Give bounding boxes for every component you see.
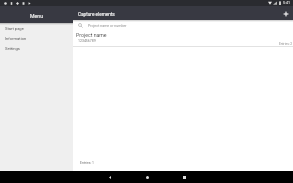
button[interactable]: Settings xyxy=(0,43,73,53)
button[interactable]: Information xyxy=(0,33,73,43)
staticText: Entries: 1 xyxy=(80,161,94,165)
staticText: Information xyxy=(5,36,27,41)
button[interactable]: Add xyxy=(280,8,291,19)
staticText: 123456789 xyxy=(78,39,96,43)
staticText: 5:41 xyxy=(283,1,290,5)
staticText: Start page xyxy=(5,26,24,31)
staticText: Project name or number xyxy=(88,24,127,28)
button[interactable]: Back xyxy=(103,171,117,183)
button[interactable]: Recent apps xyxy=(177,171,191,183)
staticText: Project name xyxy=(76,32,107,38)
staticText: Entries: 2 xyxy=(279,42,293,46)
button[interactable]: Project name or number xyxy=(73,20,293,31)
button[interactable]: Project name xyxy=(73,31,293,47)
button[interactable]: Start page xyxy=(0,23,73,33)
staticText: Capture elements xyxy=(78,12,115,18)
button[interactable]: Home xyxy=(140,171,154,183)
staticText: Menu xyxy=(30,13,44,19)
staticText: Settings xyxy=(5,46,20,51)
